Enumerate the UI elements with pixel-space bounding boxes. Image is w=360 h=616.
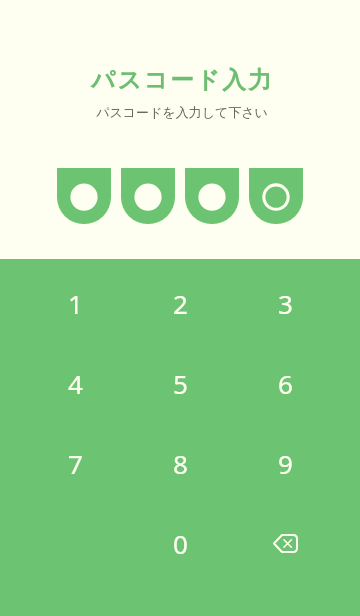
staticText: 1 xyxy=(68,286,83,321)
button[interactable]: 5 xyxy=(128,343,233,423)
staticText: 2 xyxy=(173,286,188,321)
staticText: パスコードを入力して下さい xyxy=(96,104,268,120)
staticText: 4 xyxy=(68,366,83,401)
button[interactable]: 7 xyxy=(23,423,128,503)
button[interactable]: Backspace xyxy=(233,503,338,583)
staticText: パスコード入力 xyxy=(91,65,274,95)
staticText: 3 xyxy=(278,286,293,321)
staticText: 9 xyxy=(278,446,293,481)
staticText: 6 xyxy=(278,366,293,401)
button[interactable]: 0 xyxy=(128,503,233,583)
staticText: 7 xyxy=(68,446,83,481)
button[interactable]: 2 xyxy=(128,263,233,343)
staticText: 8 xyxy=(173,446,188,481)
button[interactable]: 8 xyxy=(128,423,233,503)
button[interactable]: 1 xyxy=(23,263,128,343)
staticText: 5 xyxy=(173,366,188,401)
button[interactable]: 6 xyxy=(233,343,338,423)
button[interactable]: 3 xyxy=(233,263,338,343)
staticText: 0 xyxy=(173,526,188,561)
button[interactable]: 4 xyxy=(23,343,128,423)
button[interactable]: 9 xyxy=(233,423,338,503)
